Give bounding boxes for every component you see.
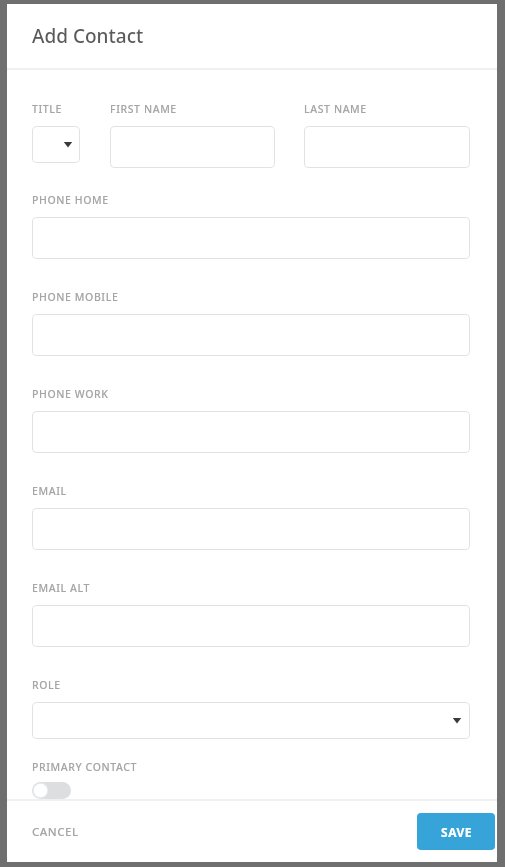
staticText: ROLE <box>32 678 61 692</box>
button[interactable]: Role dropdown <box>32 702 470 739</box>
staticText: TITLE <box>32 102 62 116</box>
staticText: LAST NAME <box>304 102 367 116</box>
staticText: PHONE WORK <box>32 387 109 401</box>
button[interactable]: CANCEL <box>21 816 90 848</box>
button[interactable] <box>304 126 470 168</box>
staticText: CANCEL <box>32 824 79 840</box>
staticText: PHONE MOBILE <box>32 290 119 304</box>
button[interactable] <box>32 411 470 453</box>
staticText: Add Contact <box>32 23 144 49</box>
button[interactable]: Title dropdown <box>32 126 80 163</box>
staticText: FIRST NAME <box>110 102 177 116</box>
button[interactable] <box>110 126 275 168</box>
staticText: PHONE HOME <box>32 193 109 207</box>
button[interactable] <box>32 217 470 259</box>
button[interactable] <box>32 508 470 550</box>
staticText: PRIMARY CONTACT <box>32 760 138 774</box>
button[interactable] <box>32 605 470 647</box>
button[interactable] <box>32 314 470 356</box>
staticText: EMAIL ALT <box>32 581 90 595</box>
button[interactable]: Primary contact toggle <box>32 782 71 799</box>
button[interactable]: SAVE <box>417 813 495 850</box>
staticText: EMAIL <box>32 484 67 498</box>
staticText: SAVE <box>441 824 472 840</box>
